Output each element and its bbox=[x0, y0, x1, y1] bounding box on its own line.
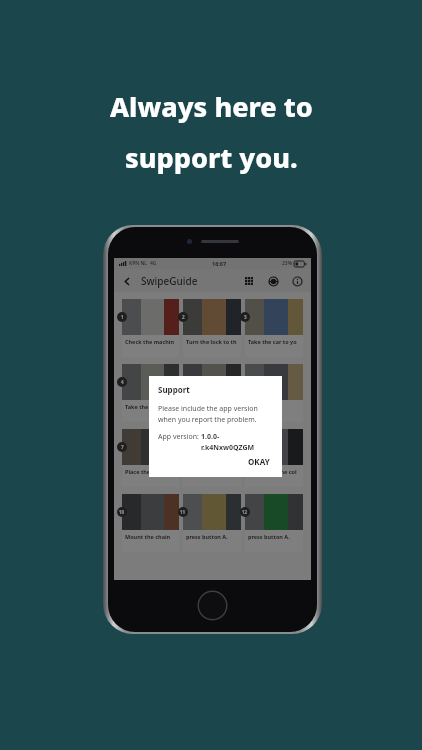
staticText: 4 bbox=[121, 379, 124, 385]
staticText: Place the machi bbox=[186, 403, 230, 410]
staticText: Take the machine bbox=[125, 403, 174, 410]
button[interactable]: 10 bbox=[122, 494, 179, 552]
button[interactable]: Back bbox=[120, 274, 134, 288]
staticText: 2 bbox=[182, 314, 185, 320]
staticText: 1 bbox=[121, 314, 124, 320]
staticText: Always here to bbox=[110, 88, 313, 125]
staticText: 16:07 bbox=[212, 260, 227, 267]
staticText: Mount the chain to bbox=[125, 533, 176, 540]
staticText: 10 bbox=[119, 509, 125, 515]
button[interactable]: 3 bbox=[245, 299, 303, 357]
button[interactable]: 9 bbox=[245, 429, 303, 487]
button[interactable]: 12 bbox=[245, 494, 303, 552]
staticText: 4G bbox=[150, 260, 157, 267]
staticText: 11 bbox=[180, 509, 186, 515]
button[interactable]: 6 bbox=[245, 364, 303, 422]
button[interactable]: 5 bbox=[183, 364, 241, 422]
staticText: press button A. bbox=[186, 533, 228, 540]
button[interactable]: Language bbox=[265, 273, 281, 289]
button[interactable]: 7 bbox=[122, 429, 179, 487]
staticText: App version: bbox=[158, 432, 201, 442]
button[interactable]: 2 bbox=[183, 299, 241, 357]
staticText: 7 bbox=[121, 444, 124, 450]
staticText: 9 bbox=[244, 444, 247, 450]
staticText: 1.0.0- r.k4Nxw0QZGM bbox=[201, 432, 255, 452]
button[interactable]: OKAY bbox=[245, 454, 273, 469]
staticText: OKAY bbox=[248, 456, 270, 467]
button[interactable]: 11 bbox=[183, 494, 241, 552]
button[interactable]: 8 bbox=[183, 429, 241, 487]
staticText: Take the car to yo bbox=[248, 338, 297, 345]
staticText: Turn the lock to th bbox=[186, 338, 237, 345]
staticText: press button A. bbox=[248, 533, 290, 540]
staticText: Please include the app version when you … bbox=[158, 404, 258, 424]
staticText: support you. bbox=[125, 139, 298, 176]
staticText: Attach bbox=[248, 403, 267, 410]
button[interactable]: Support information bbox=[289, 273, 305, 289]
staticText: Place the right co bbox=[125, 468, 173, 475]
button[interactable]: Grid view bbox=[241, 273, 257, 289]
staticText: SwipeGuide bbox=[141, 274, 198, 288]
staticText: KPN NL bbox=[129, 260, 147, 267]
staticText: Support bbox=[158, 384, 190, 395]
staticText: 23% bbox=[282, 260, 292, 267]
staticText: 12 bbox=[242, 509, 248, 515]
staticText: Check the machin bbox=[125, 338, 175, 345]
button[interactable]: 4 bbox=[122, 364, 179, 422]
staticText: Make sure the col bbox=[248, 468, 297, 475]
button[interactable]: 1 bbox=[122, 299, 179, 357]
other: Home bbox=[197, 590, 228, 621]
staticText: 3 bbox=[244, 314, 247, 320]
